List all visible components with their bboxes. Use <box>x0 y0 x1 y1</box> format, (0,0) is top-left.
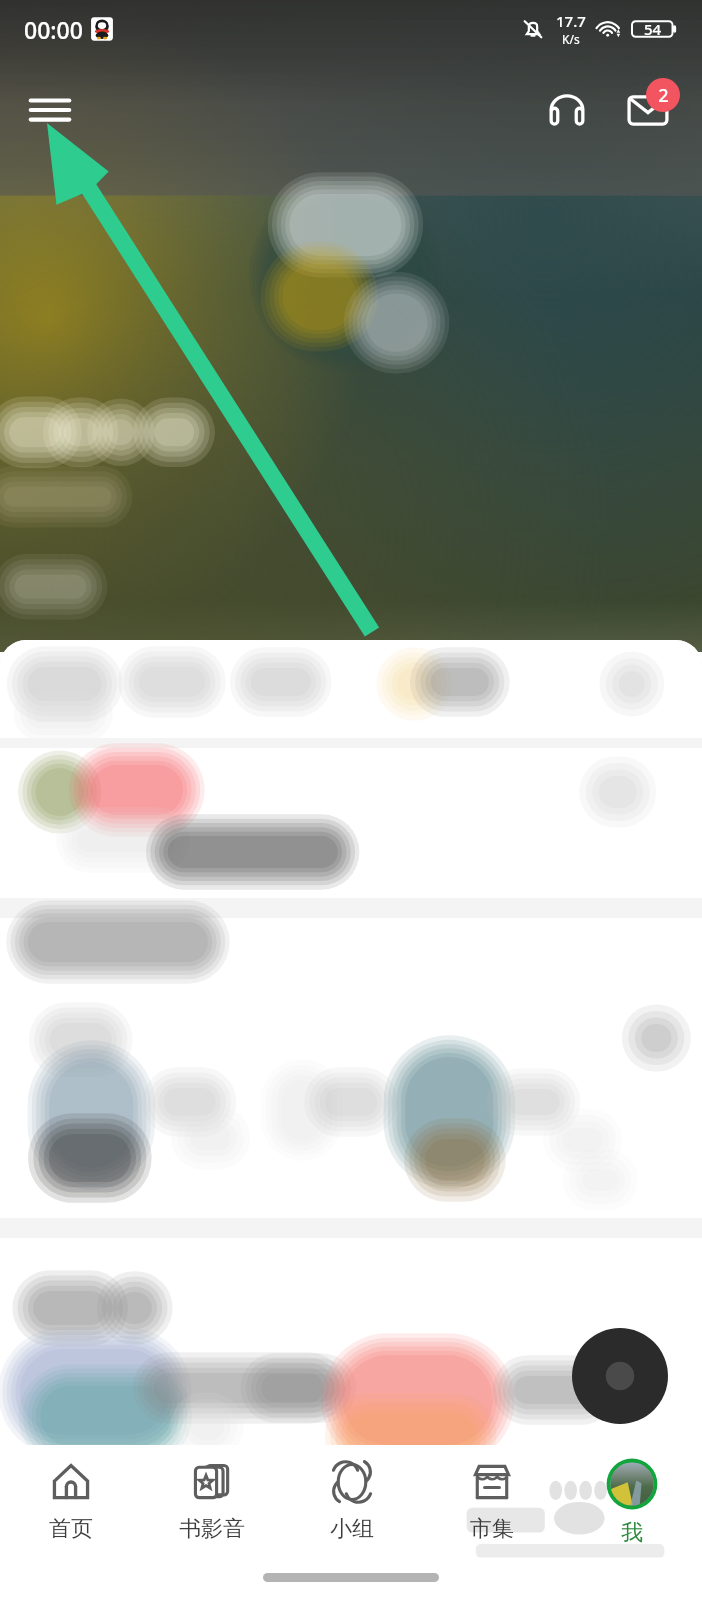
button[interactable]: 书影音 <box>141 1453 282 1543</box>
staticText: 54 <box>644 19 662 39</box>
button[interactable]: 小组 <box>282 1453 422 1543</box>
button[interactable]: Messages, 2 unread <box>614 76 682 144</box>
button[interactable]: 首页 <box>0 1453 141 1543</box>
staticText: 市集 <box>470 1515 514 1543</box>
staticText: 首页 <box>49 1515 93 1543</box>
button[interactable]: 市集 <box>422 1453 562 1543</box>
button[interactable]: Compose <box>572 1328 668 1424</box>
staticText: 2 <box>658 83 669 108</box>
staticText: 小组 <box>330 1515 374 1543</box>
staticText: K/s <box>562 31 580 47</box>
button[interactable]: 我 <box>562 1453 702 1547</box>
button[interactable]: Audio <box>536 79 598 141</box>
button[interactable]: Menu <box>20 80 80 140</box>
staticText: 书影音 <box>179 1515 245 1543</box>
staticText: 我 <box>621 1519 643 1547</box>
staticText: 00:00 <box>24 14 83 45</box>
staticText: 17.7 <box>556 11 586 31</box>
